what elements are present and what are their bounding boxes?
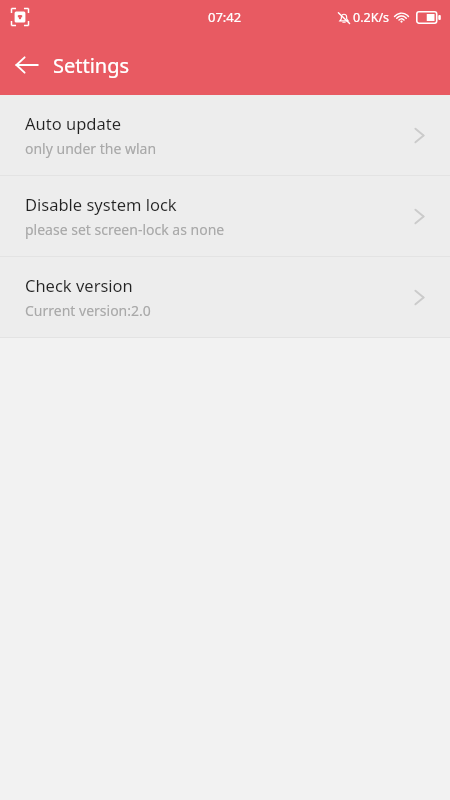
staticText: Check version (25, 274, 133, 296)
staticText: 07:42 (208, 8, 242, 26)
staticText: Disable system lock (25, 193, 177, 215)
staticText: 0.2K/s (353, 9, 390, 26)
staticText: Current version:2.0 (25, 301, 151, 320)
button[interactable]: Back (4, 42, 50, 88)
staticText: only under the wlan (25, 139, 157, 158)
button[interactable]: Check version (0, 257, 450, 337)
staticText: Settings (53, 52, 130, 79)
staticText: please set screen-lock as none (25, 220, 225, 239)
staticText: Auto update (25, 112, 121, 134)
button[interactable]: Auto update (0, 95, 450, 175)
button[interactable]: Disable system lock (0, 176, 450, 256)
